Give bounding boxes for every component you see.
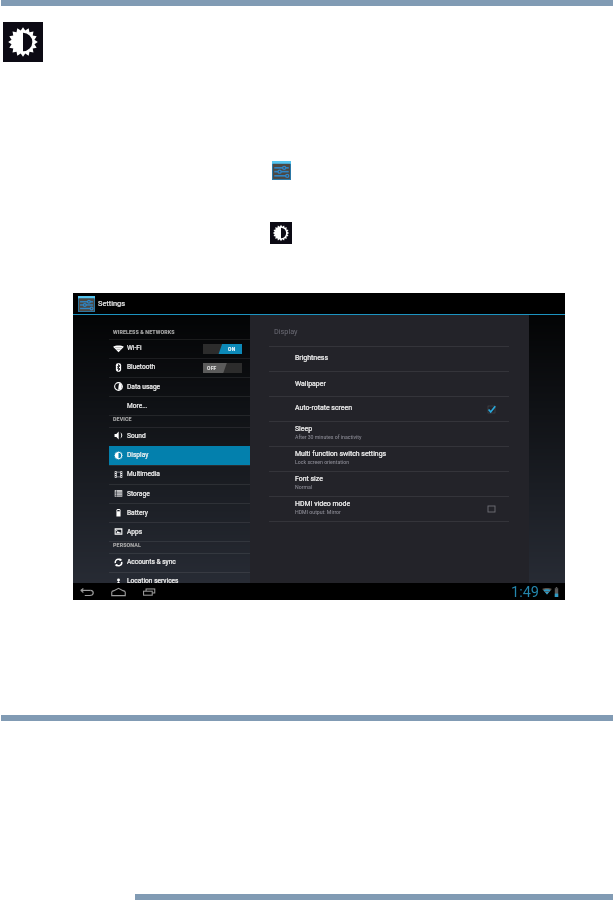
- staticText: Bluetooth: [127, 363, 156, 371]
- staticText: 1:49: [511, 584, 539, 601]
- button[interactable]: Off: [203, 363, 242, 373]
- button[interactable]: [250, 371, 529, 396]
- staticText: PERSONAL: [113, 542, 141, 548]
- staticText: ON: [228, 346, 236, 352]
- staticText: Accounts & sync: [127, 558, 176, 566]
- button[interactable]: [109, 446, 250, 465]
- button[interactable]: [109, 572, 250, 591]
- button[interactable]: [109, 484, 250, 503]
- staticText: Data usage: [127, 383, 161, 391]
- staticText: HDMI output: Mirror: [295, 509, 341, 515]
- other: Checked: [488, 406, 495, 413]
- staticText: Location services: [127, 577, 179, 585]
- staticText: OFF: [207, 365, 217, 371]
- staticText: DEVICE: [113, 416, 132, 422]
- button[interactable]: On: [203, 344, 242, 354]
- button[interactable]: [250, 396, 529, 421]
- button[interactable]: [109, 465, 250, 484]
- staticText: Wi-Fi: [127, 344, 142, 352]
- staticText: HDMI video mode: [295, 500, 351, 508]
- staticText: Display: [274, 327, 298, 336]
- other: Unchecked: [488, 506, 495, 512]
- button[interactable]: [109, 377, 250, 396]
- staticText: Normal: [295, 484, 313, 490]
- button[interactable]: Home: [111, 588, 126, 596]
- button[interactable]: [250, 421, 529, 446]
- staticText: Multi function switch settings: [295, 450, 387, 458]
- button[interactable]: [250, 346, 529, 371]
- button[interactable]: [250, 446, 529, 471]
- staticText: Auto-rotate screen: [295, 404, 353, 412]
- button[interactable]: [109, 396, 250, 415]
- button[interactable]: [109, 358, 250, 377]
- staticText: Apps: [127, 528, 143, 536]
- button[interactable]: [109, 339, 250, 358]
- staticText: WIRELESS & NETWORKS: [113, 329, 175, 335]
- staticText: Multimedia: [127, 470, 160, 478]
- staticText: Brightness: [295, 354, 329, 362]
- staticText: Settings: [98, 299, 125, 308]
- button[interactable]: [109, 522, 250, 541]
- staticText: Font size: [295, 475, 323, 483]
- staticText: Sleep: [295, 425, 313, 433]
- button[interactable]: [109, 427, 250, 446]
- staticText: Lock screen orientation: [295, 459, 350, 465]
- button[interactable]: Back: [80, 588, 94, 596]
- staticText: Storage: [127, 490, 150, 498]
- staticText: Wallpaper: [295, 380, 326, 388]
- button[interactable]: [109, 503, 250, 522]
- staticText: After 30 minutes of inactivity: [295, 434, 362, 440]
- staticText: More...: [127, 402, 148, 410]
- staticText: Battery: [127, 509, 148, 517]
- button[interactable]: [109, 553, 250, 572]
- button[interactable]: [250, 471, 529, 496]
- staticText: Display: [127, 451, 149, 459]
- button[interactable]: [250, 496, 529, 521]
- button[interactable]: Recent apps: [143, 588, 157, 596]
- staticText: Sound: [127, 432, 146, 440]
